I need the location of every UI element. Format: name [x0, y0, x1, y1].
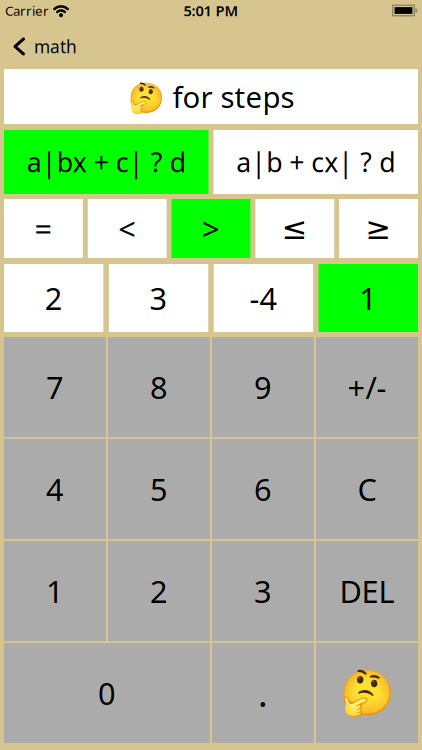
staticText: Carrier	[5, 2, 49, 19]
button[interactable]: ≥	[339, 199, 418, 258]
staticText: 0	[98, 673, 116, 713]
button[interactable]: 5	[108, 439, 210, 539]
staticText: C	[357, 469, 376, 509]
button[interactable]: 3	[212, 541, 314, 641]
staticText: DEL	[339, 571, 394, 611]
staticText: 1	[359, 278, 377, 318]
staticText: 7	[46, 367, 64, 407]
button[interactable]: +/-	[316, 337, 418, 437]
staticText: +/-	[347, 367, 386, 407]
button[interactable]: C	[316, 439, 418, 539]
button[interactable]: 2	[108, 541, 210, 641]
staticText: a|b + cx| ? d	[236, 144, 395, 180]
staticText: 2	[45, 278, 63, 318]
staticText: 4	[46, 469, 64, 509]
staticText: 2	[150, 571, 168, 611]
button[interactable]: 1	[4, 541, 106, 641]
button[interactable]: Back	[0, 35, 77, 58]
staticText: .	[258, 669, 268, 717]
button[interactable]: 9	[212, 337, 314, 437]
staticText: -4	[249, 278, 277, 318]
staticText: ≤	[282, 211, 308, 246]
button[interactable]: a|bx + c| ? d	[4, 130, 208, 194]
staticText: 🤔 for steps	[127, 77, 294, 116]
button[interactable]: >	[172, 199, 250, 258]
button[interactable]: <	[88, 199, 167, 258]
staticText: <	[118, 208, 136, 249]
button[interactable]: .	[212, 643, 314, 743]
button[interactable]: 6	[212, 439, 314, 539]
staticText: 5	[150, 469, 168, 509]
button[interactable]: 7	[4, 337, 106, 437]
staticText: 6	[254, 469, 272, 509]
staticText: 5:01 PM	[183, 1, 238, 20]
button[interactable]: 0	[4, 643, 210, 743]
button[interactable]: 🤔 for steps	[4, 69, 418, 124]
staticText: >	[202, 208, 220, 249]
button[interactable]: 1	[319, 264, 418, 332]
button[interactable]: a|b + cx| ? d	[213, 130, 418, 194]
staticText: math	[34, 35, 77, 58]
button[interactable]: DEL	[316, 541, 418, 641]
button[interactable]: 8	[108, 337, 210, 437]
button[interactable]: 2	[4, 264, 103, 332]
staticText: 🤔	[339, 668, 394, 718]
staticText: 3	[150, 278, 168, 318]
staticText: a|bx + c| ? d	[27, 144, 186, 180]
button[interactable]: 🤔	[316, 643, 418, 743]
button[interactable]: -4	[214, 264, 313, 332]
staticText: 1	[46, 571, 64, 611]
staticText: 3	[254, 571, 272, 611]
staticText: =	[34, 208, 52, 249]
button[interactable]: =	[4, 199, 83, 258]
button[interactable]: ≤	[255, 199, 334, 258]
staticText: 8	[150, 367, 168, 407]
button[interactable]: 3	[109, 264, 208, 332]
staticText: ≥	[366, 211, 392, 246]
staticText: 9	[254, 367, 272, 407]
button[interactable]: 4	[4, 439, 106, 539]
